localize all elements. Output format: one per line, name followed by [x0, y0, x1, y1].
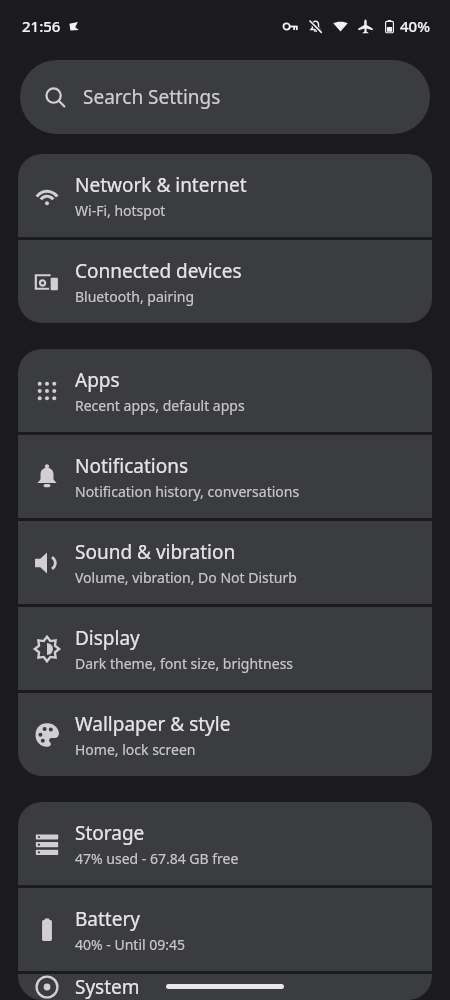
staticText: Home, lock screen — [75, 740, 196, 759]
other: Search — [45, 87, 66, 108]
button[interactable]: Apps — [18, 349, 432, 432]
staticText: Connected devices — [75, 258, 242, 284]
staticText: Storage — [75, 820, 145, 846]
button[interactable]: Network & internet — [18, 154, 432, 237]
staticText: 40% - Until 09:45 — [75, 935, 186, 954]
button[interactable]: Connected devices — [18, 240, 432, 323]
button[interactable]: Search — [20, 60, 430, 134]
staticText: Notifications — [75, 453, 189, 479]
button[interactable]: Sound & vibration — [18, 521, 432, 604]
staticText: Display — [75, 625, 140, 651]
staticText: Wi-Fi, hotspot — [75, 201, 166, 220]
button[interactable]: Battery — [18, 888, 432, 971]
staticText: 21:56 — [22, 16, 61, 36]
staticText: 40% — [400, 16, 430, 36]
staticText: Volume, vibration, Do Not Disturb — [75, 568, 297, 587]
staticText: 47% used - 67.84 GB free — [75, 849, 239, 868]
staticText: Battery — [75, 906, 140, 932]
staticText: Notification history, conversations — [75, 482, 300, 501]
staticText: Wallpaper & style — [75, 711, 231, 737]
staticText: Sound & vibration — [75, 539, 236, 565]
staticText: System — [75, 974, 140, 1000]
staticText: Search Settings — [83, 84, 221, 110]
staticText: Network & internet — [75, 172, 247, 198]
button[interactable]: Storage — [18, 802, 432, 885]
button[interactable]: System — [18, 974, 432, 1000]
button[interactable]: Display — [18, 607, 432, 690]
button[interactable]: Notifications — [18, 435, 432, 518]
staticText: Apps — [75, 367, 120, 393]
staticText: Bluetooth, pairing — [75, 287, 195, 306]
staticText: Dark theme, font size, brightness — [75, 654, 294, 673]
button[interactable]: Wallpaper & style — [18, 693, 432, 776]
staticText: Recent apps, default apps — [75, 396, 245, 415]
